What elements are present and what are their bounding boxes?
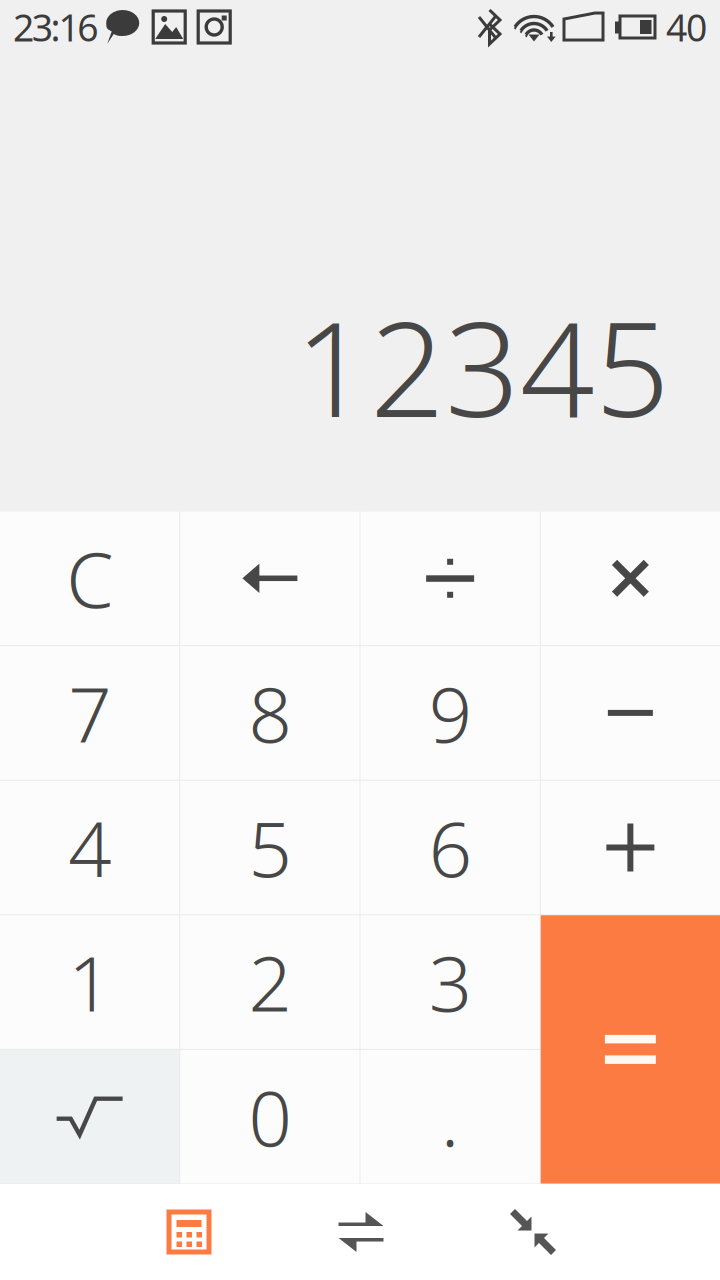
button[interactable]: 0 — [180, 1050, 359, 1183]
button[interactable]: Equals — [541, 915, 720, 1183]
staticText: 7 — [68, 662, 111, 763]
staticText: C — [66, 528, 113, 629]
staticText: 4 — [68, 797, 111, 898]
button[interactable]: Calculator — [103, 1184, 275, 1280]
button[interactable]: Divide — [360, 511, 540, 645]
staticText: 9 — [429, 662, 472, 763]
button[interactable]: 1 — [0, 915, 179, 1049]
button[interactable]: 7 — [0, 646, 179, 780]
staticText: . — [441, 1066, 460, 1167]
button[interactable]: Multiply — [541, 511, 720, 645]
staticText: 0 — [248, 1066, 291, 1167]
staticText: 3 — [429, 932, 472, 1032]
button[interactable]: Backspace — [180, 511, 359, 645]
button[interactable]: 2 — [180, 915, 359, 1049]
staticText: 2 — [248, 932, 291, 1032]
button[interactable]: Square root — [0, 1050, 179, 1183]
staticText: 40 — [666, 2, 707, 52]
button[interactable]: Collapse — [447, 1184, 619, 1280]
button[interactable]: 8 — [180, 646, 359, 780]
button[interactable]: 4 — [0, 781, 179, 914]
button[interactable]: 6 — [360, 781, 540, 914]
button[interactable]: Unit converter — [275, 1184, 447, 1280]
button[interactable]: Plus — [541, 781, 720, 914]
button[interactable]: 3 — [360, 915, 540, 1049]
button[interactable]: 5 — [180, 781, 359, 914]
staticText: 1 — [68, 932, 111, 1032]
staticText: 23:16 — [13, 2, 98, 52]
button[interactable]: . — [360, 1050, 540, 1183]
button[interactable]: Clear — [0, 511, 179, 645]
staticText: 6 — [429, 797, 472, 898]
staticText: 12345 — [295, 279, 670, 453]
button[interactable]: 9 — [360, 646, 540, 780]
staticText: 8 — [248, 662, 291, 763]
button[interactable]: Minus — [541, 646, 720, 780]
staticText: 5 — [248, 797, 291, 898]
